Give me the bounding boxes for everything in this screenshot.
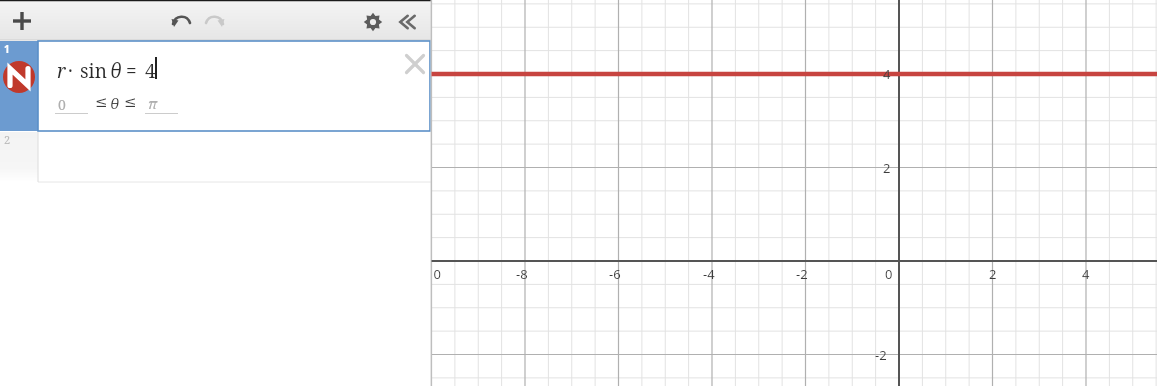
- staticText: 4: [883, 65, 891, 83]
- staticText: -8: [516, 265, 528, 283]
- staticText: θ: [110, 58, 122, 84]
- button[interactable]: [38, 41, 431, 131]
- button[interactable]: Settings: [358, 6, 388, 34]
- staticText: ·: [68, 58, 73, 84]
- staticText: sin: [80, 58, 107, 84]
- staticText: -2: [796, 265, 808, 283]
- staticText: π: [148, 94, 158, 113]
- button[interactable]: Toggle graph 1: [0, 41, 38, 131]
- button[interactable]: Collapse panel: [393, 6, 423, 34]
- button[interactable]: Delete expression: [402, 51, 428, 77]
- button[interactable]: Add expression: [6, 5, 38, 35]
- staticText: -2: [875, 346, 887, 364]
- button[interactable]: [0, 132, 431, 182]
- staticText: =: [126, 58, 137, 84]
- staticText: θ: [110, 93, 120, 113]
- staticText: 2: [4, 132, 11, 147]
- staticText: -4: [703, 265, 715, 283]
- staticText: 1: [4, 42, 10, 56]
- staticText: 2: [883, 159, 891, 177]
- staticText: ≤: [124, 93, 137, 110]
- button[interactable]: Redo: [199, 6, 231, 34]
- button[interactable]: Undo: [165, 6, 197, 34]
- staticText: 4: [1082, 265, 1090, 283]
- staticText: -6: [609, 265, 621, 283]
- staticText: ≤: [95, 93, 108, 110]
- staticText: 4: [145, 58, 156, 84]
- staticText: 0: [885, 265, 893, 283]
- staticText: -10: [422, 265, 442, 283]
- staticText: 2: [989, 265, 997, 283]
- staticText: r: [57, 58, 66, 84]
- staticText: 0: [58, 95, 66, 114]
